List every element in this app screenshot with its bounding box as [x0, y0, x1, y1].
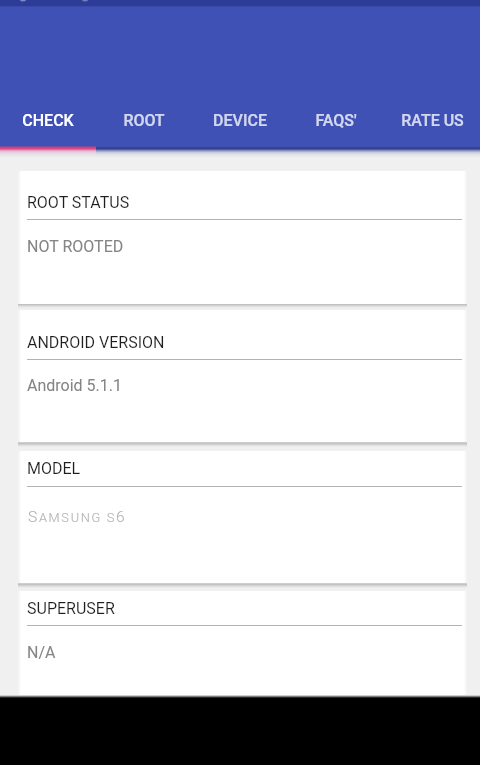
staticText: N/A [27, 643, 56, 662]
staticText: CHECK [22, 111, 74, 130]
button[interactable]: ROOT STATUS [18, 171, 467, 304]
staticText: SAMSUNG S6 [28, 508, 127, 526]
staticText: ANDROID VERSION [27, 333, 165, 352]
staticText: ROOT [123, 111, 165, 130]
button[interactable]: RATE US [384, 96, 480, 144]
staticText: NOT ROOTED [27, 237, 124, 256]
button[interactable]: MODEL [18, 451, 467, 583]
button[interactable]: ROOT [96, 96, 192, 144]
button[interactable]: CHECK [0, 96, 96, 144]
staticText: RATE US [401, 111, 464, 130]
button[interactable]: ANDROID VERSION [18, 310, 467, 442]
staticText: SUPERUSER [27, 599, 115, 618]
staticText: Android 5.1.1 [27, 376, 122, 395]
button[interactable]: FAQS' [288, 96, 384, 144]
staticText: FAQS' [315, 111, 357, 130]
staticText: MODEL [27, 459, 81, 478]
button[interactable]: DEVICE [192, 96, 288, 144]
staticText: ROOT STATUS [27, 193, 130, 212]
button[interactable]: SUPERUSER [18, 591, 467, 724]
staticText: DEVICE [213, 111, 267, 130]
